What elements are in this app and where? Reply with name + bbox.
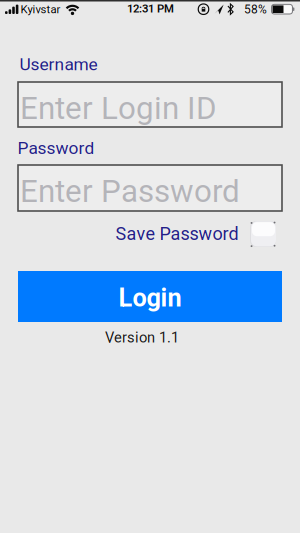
staticText: Version 1.1 (105, 329, 179, 346)
staticText: Username (19, 54, 97, 74)
staticText: Enter Login ID (18, 89, 172, 119)
staticText: Enter Password (20, 173, 240, 210)
staticText: Save Password (115, 223, 238, 244)
staticText: 12:31 PM (127, 2, 174, 15)
staticText: Kyivstar (20, 3, 60, 16)
button[interactable]: Save Password (250, 221, 276, 247)
staticText: 58% (244, 2, 267, 16)
staticText: Login (118, 283, 181, 313)
button[interactable]: Login (18, 271, 282, 322)
staticText: Enter Login ID (20, 90, 217, 127)
textField[interactable]: Enter Password (18, 173, 282, 203)
staticText: Enter Password (18, 173, 185, 203)
staticText: Password (17, 138, 94, 158)
textField[interactable]: Enter Login ID (18, 89, 282, 119)
